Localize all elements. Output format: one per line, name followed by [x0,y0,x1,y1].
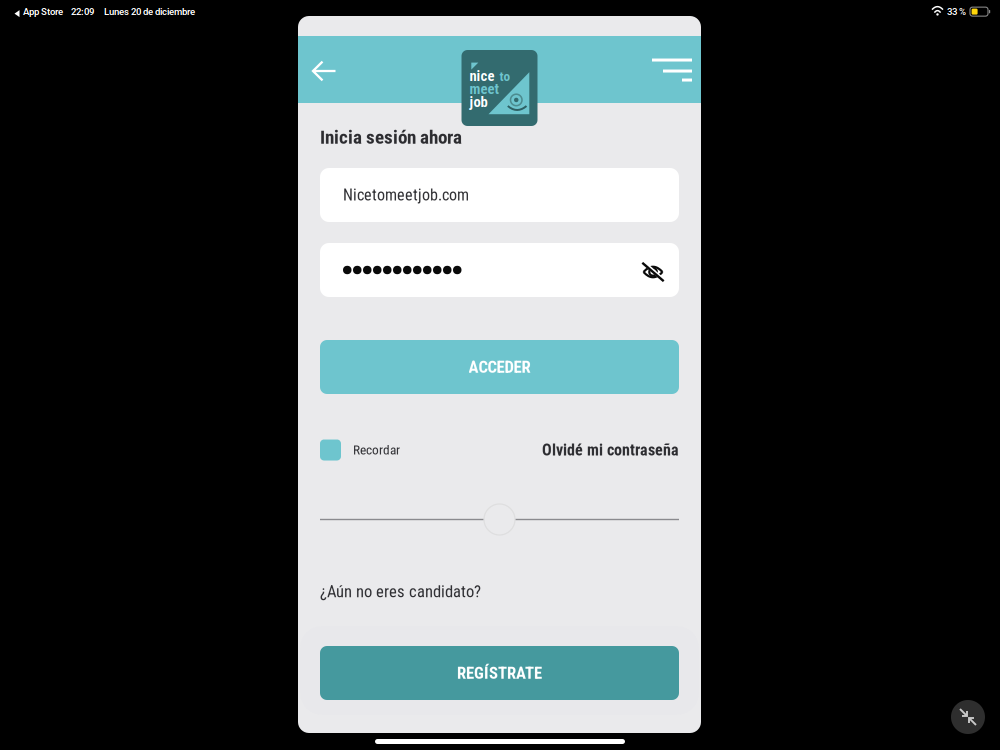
button[interactable]: REGÍSTRATE [320,646,679,700]
staticText: 22:09 [71,6,94,17]
staticText: Recordar [353,442,400,458]
staticText: Nicetomeetjob.com [343,186,469,204]
button[interactable]: Recordar [320,437,400,463]
staticText: to [499,69,510,84]
staticText: Lunes 20 de diciembre [104,6,195,17]
button[interactable]: Exit zoom [951,700,985,734]
staticText: nice [469,67,494,85]
staticText: Inicia sesión ahora [320,126,462,148]
staticText: job [469,93,487,111]
staticText: REGÍSTRATE [457,663,542,683]
staticText: Olvidé mi contraseña [542,441,679,459]
button[interactable]: Olvidé mi contraseña [542,437,679,463]
button[interactable]: ACCEDER [320,340,679,394]
button[interactable]: Menu [638,47,692,93]
button[interactable]: Back [297,45,351,97]
staticText: App Store [23,6,63,17]
button[interactable]: Show password [633,255,671,285]
staticText: ¿Aún no eres candidato? [320,582,481,601]
staticText: 33 % [947,6,966,17]
staticText: meet [469,80,498,98]
staticText: ACCEDER [468,357,530,377]
